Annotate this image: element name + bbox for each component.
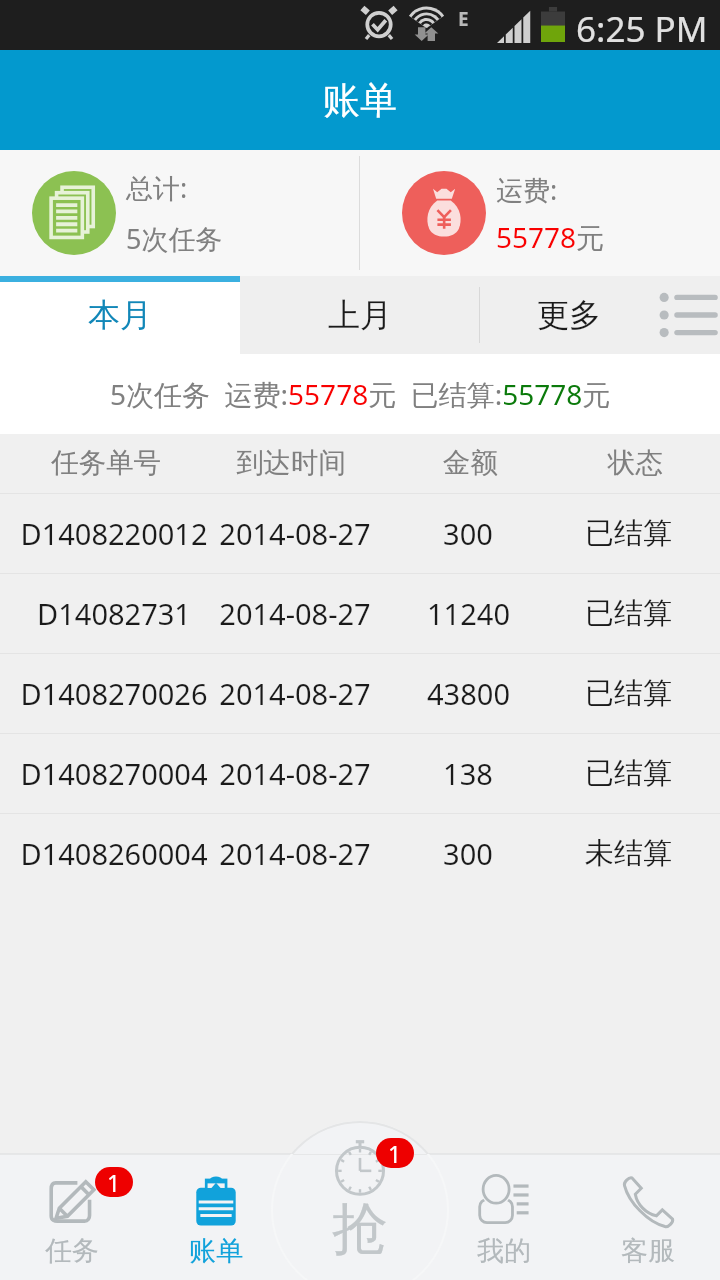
button[interactable]: 运费: — [360, 150, 720, 276]
staticText: 2014-08-27 — [219, 754, 371, 793]
button[interactable]: 1 — [0, 1120, 144, 1280]
staticText: 账单 — [323, 77, 397, 124]
staticText: 我的 — [477, 1234, 531, 1268]
staticText: 客服 — [621, 1234, 675, 1268]
button[interactable]: 账单 — [144, 1120, 288, 1280]
button[interactable]: D1408270004 — [0, 734, 720, 813]
staticText: 未结算 — [585, 835, 672, 872]
staticText: 已结算 — [585, 755, 672, 792]
staticText: 5次任务 — [126, 220, 223, 257]
other: List options — [655, 293, 716, 337]
staticText: 6:25 PM — [576, 5, 708, 53]
staticText: 2014-08-27 — [219, 594, 371, 633]
staticText: 抢 — [332, 1194, 388, 1265]
staticText: D1408260004 — [20, 834, 208, 873]
button[interactable]: 1 — [288, 1120, 432, 1280]
staticText: D14082731 — [37, 594, 191, 633]
button[interactable]: D1408260004 — [0, 814, 720, 893]
staticText: 总计: — [126, 169, 188, 206]
staticText: 2014-08-27 — [219, 834, 371, 873]
button[interactable]: D14082731 — [0, 574, 720, 653]
staticText: 金额 — [443, 446, 498, 481]
staticText: 5次任务 运费:55778元 已结算:55778元 — [110, 375, 611, 413]
staticText: 43800 — [427, 674, 510, 713]
staticText: 已结算 — [585, 675, 672, 712]
staticText: 到达时间 — [236, 446, 346, 481]
staticText: 11240 — [427, 594, 510, 633]
staticText: 300 — [443, 834, 493, 873]
staticText: 300 — [443, 514, 493, 553]
button[interactable]: 更多 — [480, 276, 720, 354]
staticText: 上月 — [328, 295, 392, 335]
button[interactable]: 总计: — [0, 150, 360, 276]
button[interactable]: D1408220012 — [0, 494, 720, 573]
staticText: 运费: — [496, 171, 558, 208]
staticText: 任务单号 — [51, 446, 161, 481]
staticText: 55778元 — [496, 218, 605, 256]
staticText: 账单 — [189, 1234, 243, 1268]
staticText: 本月 — [88, 295, 152, 335]
staticText: 1 — [107, 1167, 121, 1197]
staticText: 138 — [443, 754, 493, 793]
button[interactable]: D1408270026 — [0, 654, 720, 733]
staticText: D1408220012 — [20, 514, 208, 553]
staticText: D1408270026 — [20, 674, 208, 713]
staticText: E — [458, 6, 469, 32]
staticText: 2014-08-27 — [219, 674, 371, 713]
staticText: 2014-08-27 — [219, 514, 371, 553]
staticText: 状态 — [608, 446, 663, 481]
button[interactable]: 上月 — [240, 276, 480, 354]
button[interactable]: 本月 — [0, 276, 240, 354]
staticText: D1408270004 — [20, 754, 208, 793]
staticText: 1 — [388, 1138, 402, 1168]
staticText: 更多 — [537, 295, 601, 335]
staticText: 任务 — [45, 1234, 99, 1268]
staticText: 已结算 — [585, 595, 672, 632]
button[interactable]: 客服 — [576, 1120, 720, 1280]
staticText: 已结算 — [585, 515, 672, 552]
button[interactable]: 我的 — [432, 1120, 576, 1280]
